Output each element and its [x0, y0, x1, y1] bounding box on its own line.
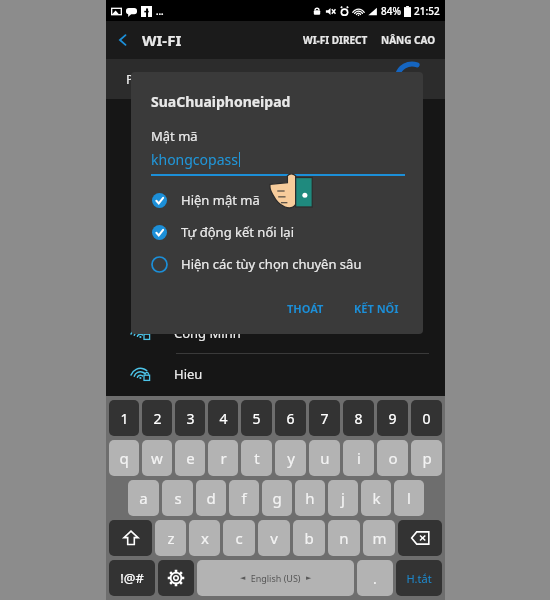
- button[interactable]: b: [293, 520, 325, 556]
- staticText: 7: [320, 409, 329, 428]
- button[interactable]: x: [189, 520, 220, 556]
- button[interactable]: NÂNG CAO: [375, 25, 445, 55]
- staticText: 6: [286, 409, 295, 428]
- button[interactable]: o: [377, 440, 408, 476]
- staticText: THOÁT: [287, 301, 324, 316]
- staticText: 2: [153, 409, 162, 428]
- staticText: ...: [156, 5, 164, 17]
- button[interactable]: r: [208, 440, 238, 476]
- button[interactable]: a: [128, 480, 159, 516]
- staticText: H.tắt: [406, 571, 432, 586]
- staticText: r: [220, 448, 227, 468]
- staticText: Tự động kết nối lại: [181, 223, 294, 241]
- button[interactable]: KẾT NỐI: [348, 295, 405, 322]
- staticText: j: [341, 488, 345, 508]
- button[interactable]: f: [229, 480, 259, 516]
- staticText: 0: [422, 409, 431, 428]
- button[interactable]: v: [258, 520, 290, 556]
- button[interactable]: i: [343, 440, 374, 476]
- staticText: b: [304, 528, 314, 548]
- staticText: p: [422, 448, 432, 468]
- button[interactable]: l: [394, 480, 424, 516]
- staticText: WI-FI: [142, 30, 182, 50]
- button[interactable]: u: [309, 440, 340, 476]
- staticText: u: [320, 448, 330, 468]
- button[interactable]: g: [262, 480, 292, 516]
- button[interactable]: t: [241, 440, 272, 476]
- staticText: s: [174, 488, 182, 508]
- button[interactable]: Cong Minh: [106, 313, 445, 353]
- staticText: !@#: [120, 569, 144, 587]
- button[interactable]: Settings: [158, 560, 194, 596]
- button[interactable]: k: [361, 480, 391, 516]
- button[interactable]: 9: [377, 400, 408, 436]
- button[interactable]: Shift: [109, 520, 152, 556]
- button[interactable]: !@#: [109, 560, 155, 596]
- button[interactable]: e: [175, 440, 205, 476]
- staticText: 9: [388, 409, 397, 428]
- button[interactable]: THOÁT: [277, 295, 334, 322]
- button[interactable]: 8: [343, 400, 374, 436]
- staticText: d: [206, 488, 216, 508]
- button[interactable]: d: [196, 480, 226, 516]
- staticText: WI-FI DIRECT: [303, 33, 368, 47]
- button[interactable]: 3: [175, 400, 205, 436]
- button[interactable]: ◄: [197, 560, 354, 596]
- button[interactable]: c: [223, 520, 255, 556]
- staticText: w: [151, 448, 163, 468]
- button[interactable]: z: [155, 520, 186, 556]
- button[interactable]: Hiện các tùy chọn chuyên sâu: [151, 252, 405, 276]
- button[interactable]: Backspace: [398, 520, 442, 556]
- staticText: 4: [219, 409, 228, 428]
- staticText: SuaChuaiphoneipad: [151, 92, 291, 111]
- button[interactable]: WI-FI DIRECT: [296, 25, 375, 55]
- button[interactable]: 4: [208, 400, 238, 436]
- staticText: n: [339, 528, 349, 548]
- staticText: m: [372, 528, 387, 548]
- button[interactable]: 0: [411, 400, 442, 436]
- button[interactable]: 7: [309, 400, 340, 436]
- staticText: z: [167, 528, 175, 548]
- staticText: Hiện mật mã: [181, 191, 260, 209]
- staticText: x: [201, 528, 209, 548]
- button[interactable]: H.tắt: [396, 560, 442, 596]
- button[interactable]: j: [328, 480, 358, 516]
- button[interactable]: 5: [241, 400, 272, 436]
- button[interactable]: y: [275, 440, 306, 476]
- staticText: Mật mã: [151, 127, 198, 145]
- button[interactable]: m: [363, 520, 395, 556]
- staticText: 3: [186, 409, 195, 428]
- button[interactable]: w: [142, 440, 172, 476]
- staticText: .: [373, 569, 377, 588]
- staticText: a: [139, 488, 148, 508]
- staticText: 84%: [381, 4, 401, 18]
- button[interactable]: q: [109, 440, 139, 476]
- staticText: Hieu: [174, 365, 203, 383]
- button[interactable]: 1: [109, 400, 139, 436]
- button[interactable]: Back: [106, 23, 140, 57]
- button[interactable]: s: [162, 480, 193, 516]
- staticText: English (US): [246, 572, 306, 584]
- staticText: Cong Minh: [174, 324, 241, 342]
- button[interactable]: p: [411, 440, 442, 476]
- button[interactable]: Hiện mật mã: [151, 188, 405, 212]
- staticText: i: [357, 448, 361, 468]
- staticText: t: [254, 448, 260, 468]
- button[interactable]: Tự động kết nối lại: [151, 220, 405, 244]
- button[interactable]: .: [357, 560, 393, 596]
- button[interactable]: h: [295, 480, 325, 516]
- staticText: KẾT NỐI: [354, 301, 399, 316]
- staticText: 21:52: [414, 4, 440, 18]
- staticText: f: [241, 488, 247, 508]
- staticText: 1: [120, 409, 129, 428]
- staticText: l: [407, 488, 411, 508]
- staticText: 8: [354, 409, 363, 428]
- button[interactable]: 6: [275, 400, 306, 436]
- staticText: Hiện các tùy chọn chuyên sâu: [181, 255, 362, 273]
- button[interactable]: 2: [142, 400, 172, 436]
- staticText: ◄: [240, 574, 246, 582]
- staticText: g: [272, 488, 282, 508]
- button[interactable]: n: [328, 520, 360, 556]
- button[interactable]: Hieu: [106, 354, 445, 394]
- staticText: k: [372, 488, 381, 508]
